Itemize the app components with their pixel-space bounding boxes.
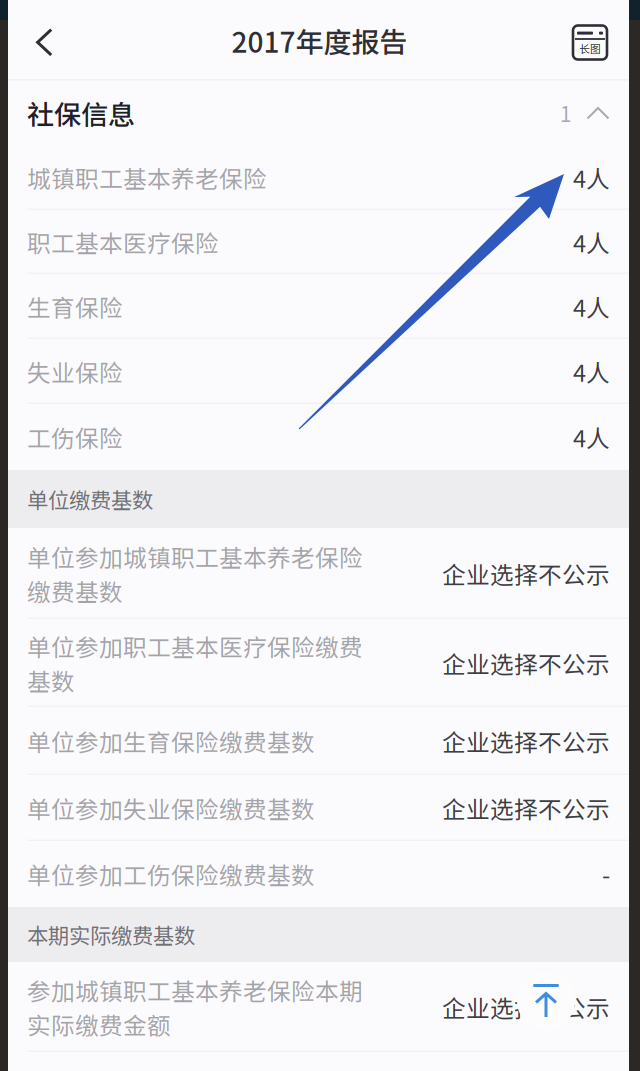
button[interactable]: 工伤保险 xyxy=(8,404,629,470)
staticText: 4人 xyxy=(573,160,610,195)
staticText: 企业选择不公示 xyxy=(442,791,610,825)
button[interactable]: 参加城镇职工基本养老保险本期 实际缴费金额 xyxy=(8,962,629,1052)
staticText: 单位参加工伤保险缴费基数 xyxy=(27,857,315,891)
staticText: 企业选择不公示 xyxy=(442,556,610,591)
button[interactable]: 职工基本医疗保险 xyxy=(8,210,629,274)
staticText: 单位参加失业保险缴费基数 xyxy=(27,791,315,825)
button[interactable]: 单位参加职工基本医疗保险缴费 基数 xyxy=(8,619,629,707)
staticText: - xyxy=(602,857,610,891)
staticText: 1 xyxy=(560,98,571,128)
staticText: 长图 xyxy=(579,41,601,56)
staticText: 单位参加职工基本医疗保险缴费 基数 xyxy=(27,629,363,697)
button[interactable]: 单位参加城镇职工基本养老保险 缴费基数 xyxy=(8,528,629,619)
staticText: 单位参加城镇职工基本养老保险 缴费基数 xyxy=(27,539,363,608)
staticText: 企业选择不公示 xyxy=(442,724,610,758)
staticText: 4人 xyxy=(573,225,610,259)
staticText: 企业选择不公示 xyxy=(442,990,610,1024)
staticText: 工伤保险 xyxy=(27,420,123,454)
staticText: 生育保险 xyxy=(27,289,123,324)
button[interactable]: 单位参加生育保险缴费基数 xyxy=(8,707,629,775)
button[interactable]: 单位参加工伤保险缴费基数 xyxy=(8,841,629,907)
staticText: 本期实际缴费基数 xyxy=(27,919,195,950)
staticText: 2017年度报告 xyxy=(231,20,407,61)
button[interactable]: 失业保险 xyxy=(8,339,629,404)
button[interactable]: Back xyxy=(8,0,69,80)
staticText: 参加城镇职工基本养老保险本期 实际缴费金额 xyxy=(27,973,363,1041)
staticText: 4人 xyxy=(573,420,610,454)
button[interactable]: Save as long image xyxy=(570,0,629,80)
staticText: 单位参加生育保险缴费基数 xyxy=(27,724,315,758)
staticText: 企业选择不公示 xyxy=(442,646,610,680)
button[interactable]: 城镇职工基本养老保险 xyxy=(8,145,629,210)
button[interactable]: 单位参加失业保险缴费基数 xyxy=(8,775,629,841)
button[interactable]: 生育保险 xyxy=(8,274,629,339)
button[interactable]: 社保信息 xyxy=(8,81,629,145)
staticText: 4人 xyxy=(573,289,610,324)
staticText: 城镇职工基本养老保险 xyxy=(27,160,267,195)
staticText: 社保信息 xyxy=(27,93,135,133)
button[interactable]: Scroll to top xyxy=(517,972,575,1030)
staticText: 4人 xyxy=(573,354,610,389)
staticText: 失业保险 xyxy=(27,354,123,389)
staticText: 单位缴费基数 xyxy=(27,484,153,514)
staticText: 职工基本医疗保险 xyxy=(27,225,219,259)
